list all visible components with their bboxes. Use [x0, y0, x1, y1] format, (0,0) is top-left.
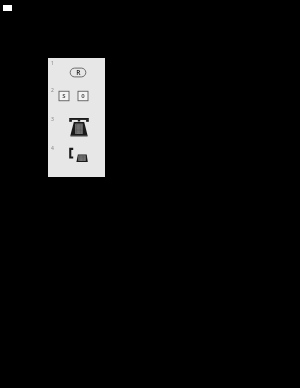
staticText: S — [62, 92, 66, 100]
staticText: 3 — [51, 116, 54, 123]
staticText: 0 — [81, 92, 85, 100]
staticText: 1 — [51, 60, 54, 67]
staticText: 4 — [51, 145, 54, 152]
staticText: R — [76, 68, 81, 76]
button[interactable]: Telephone service figure — [48, 58, 105, 177]
staticText: 2 — [51, 87, 54, 94]
